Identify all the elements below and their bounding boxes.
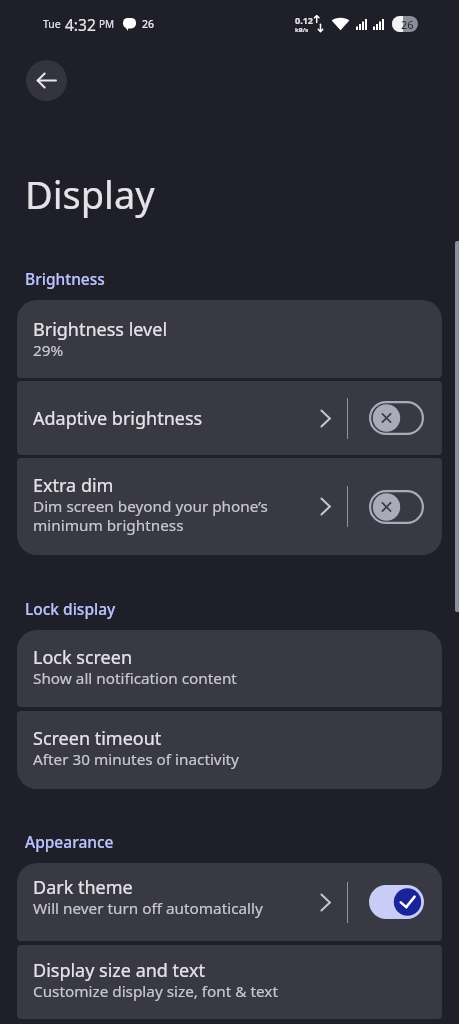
staticText: Customize display size, font & text bbox=[33, 981, 278, 1002]
staticText: Display bbox=[25, 168, 155, 220]
staticText: Will never turn off automatically bbox=[33, 898, 263, 919]
staticText: Brightness level bbox=[33, 317, 168, 342]
button[interactable]: Dark theme toggle bbox=[369, 883, 425, 921]
staticText: 29% bbox=[33, 340, 64, 361]
button[interactable]: Screen timeout bbox=[17, 711, 442, 789]
staticText: Lock screen bbox=[33, 645, 133, 670]
staticText: Appearance bbox=[25, 831, 114, 852]
button[interactable]: Lock screen bbox=[17, 630, 442, 707]
staticText: Show all notification content bbox=[33, 668, 237, 689]
staticText: Extra dim bbox=[33, 473, 114, 498]
button[interactable]: Dark theme bbox=[17, 863, 442, 941]
button[interactable]: Adaptive brightness bbox=[17, 381, 442, 455]
button[interactable]: Open Extra dim settings bbox=[317, 498, 334, 515]
button[interactable]: Extra dim toggle bbox=[369, 488, 425, 526]
staticText: Dark theme bbox=[33, 875, 133, 900]
button[interactable]: Extra dim bbox=[17, 458, 442, 555]
staticText: Adaptive brightness bbox=[33, 406, 203, 431]
button[interactable]: Back bbox=[26, 60, 67, 101]
staticText: Tue bbox=[43, 17, 61, 31]
staticText: 0.12 bbox=[295, 14, 313, 26]
button[interactable]: Brightness level bbox=[17, 300, 442, 378]
staticText: Screen timeout bbox=[33, 726, 162, 751]
staticText: PM bbox=[99, 17, 115, 31]
staticText: 4:32 bbox=[65, 14, 96, 35]
staticText: After 30 minutes of inactivity bbox=[33, 749, 239, 770]
staticText: Lock display bbox=[25, 598, 116, 619]
button[interactable]: Open Dark theme settings bbox=[317, 894, 334, 911]
staticText: 26 bbox=[142, 17, 155, 31]
staticText: Dim screen beyond your phone’s minimum b… bbox=[33, 496, 268, 535]
staticText: 26 bbox=[401, 17, 414, 32]
staticText: kB/s bbox=[295, 26, 309, 34]
button[interactable]: Open Adaptive brightness settings bbox=[317, 410, 334, 427]
staticText: Brightness bbox=[25, 268, 105, 289]
button[interactable]: Display size and text bbox=[17, 945, 442, 1019]
staticText: Display size and text bbox=[33, 958, 205, 983]
button[interactable]: Adaptive brightness toggle bbox=[369, 399, 425, 437]
